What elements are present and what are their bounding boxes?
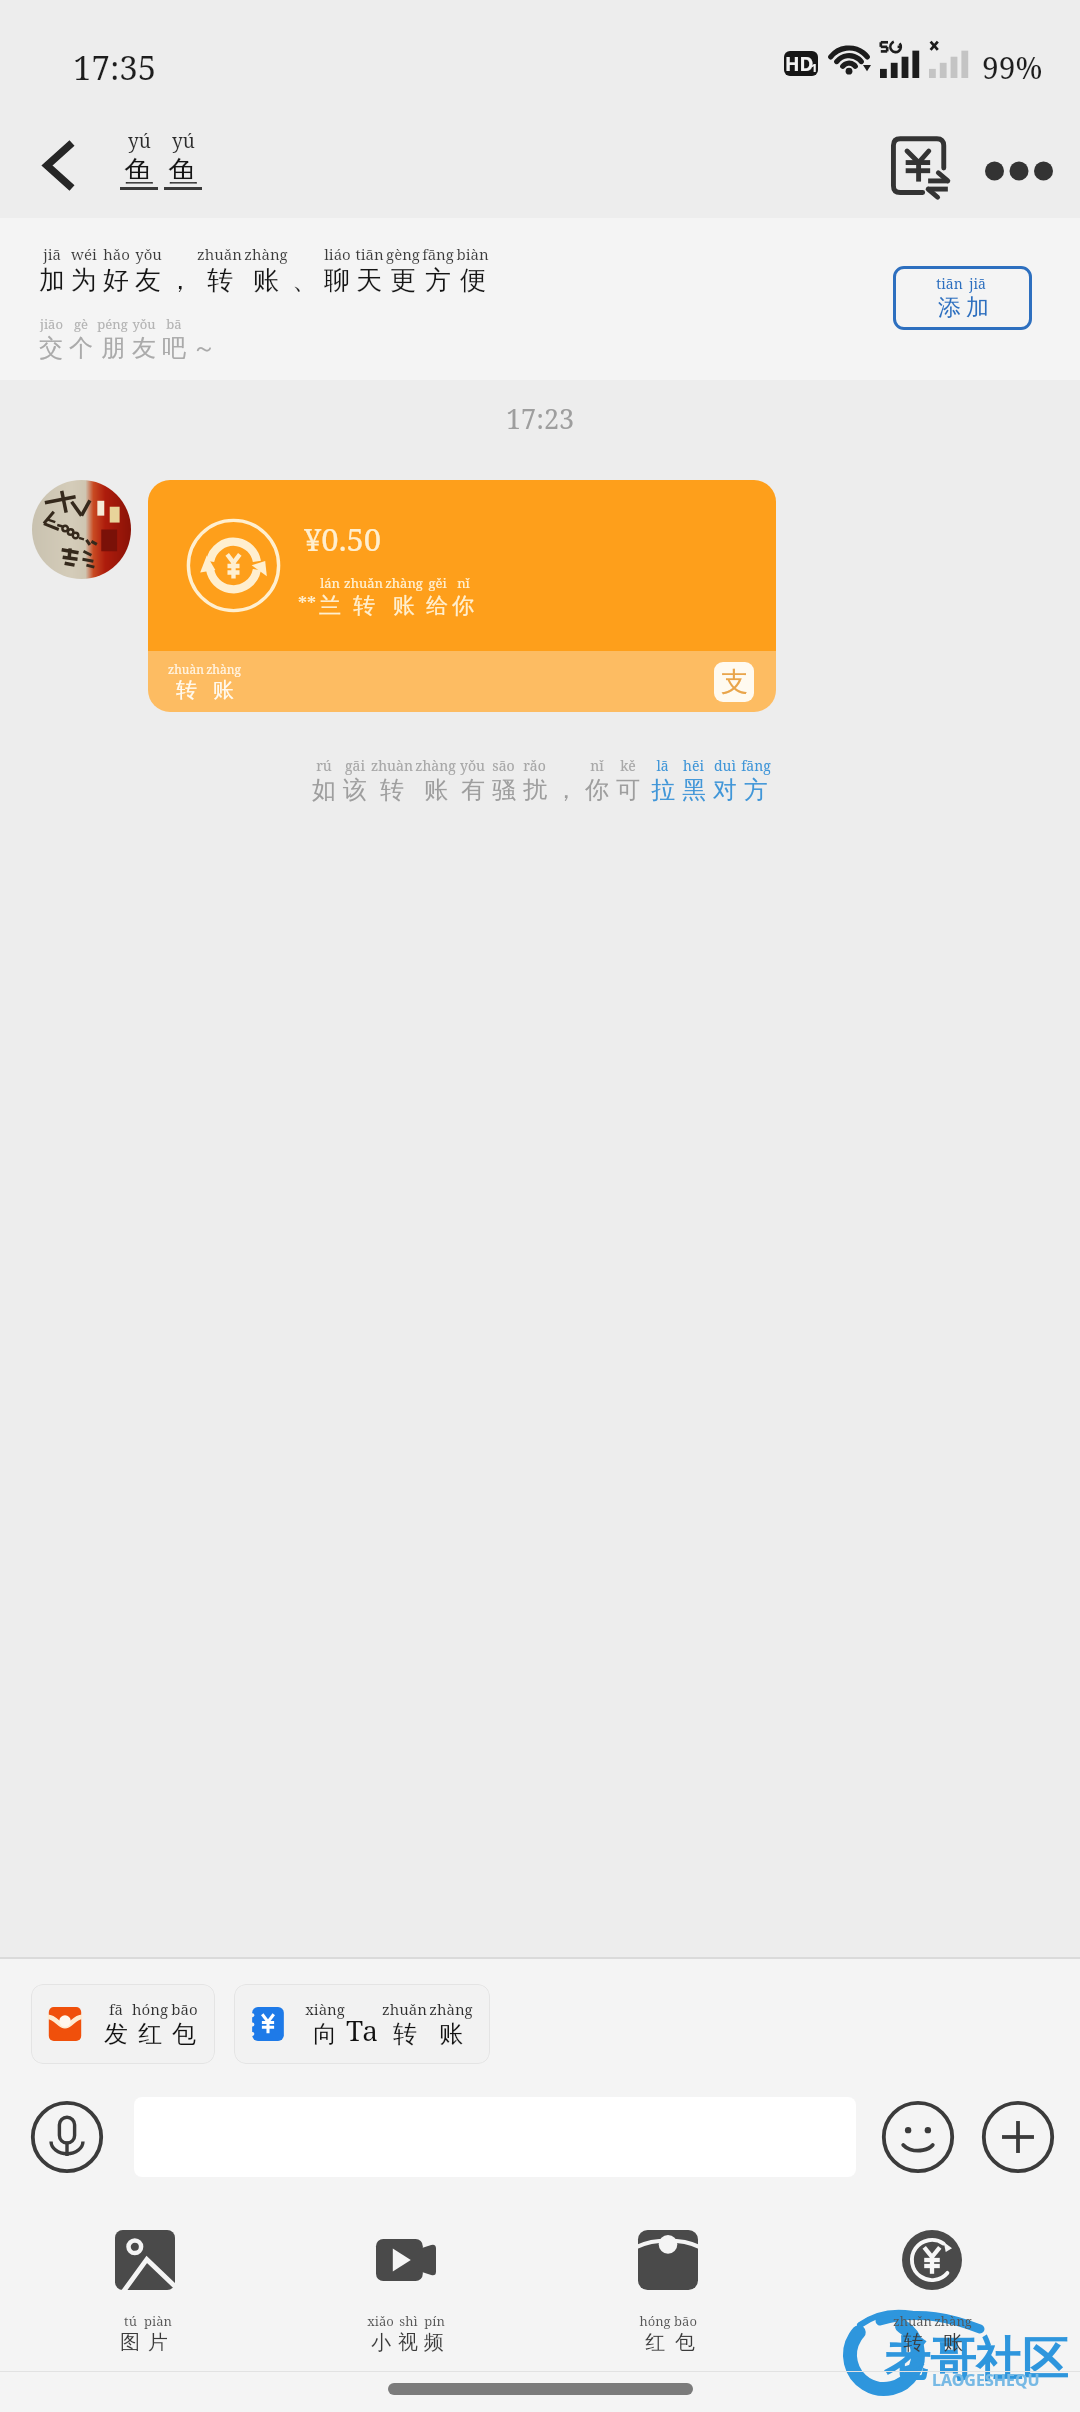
button[interactable]: Back [18, 124, 100, 206]
staticText: 兰 [319, 592, 341, 620]
button[interactable]: Emoji [879, 2098, 957, 2176]
staticText: ～ [192, 333, 216, 363]
button[interactable]: hóng [588, 2230, 748, 2355]
staticText: 账 [253, 264, 279, 297]
staticText: 支 [721, 665, 748, 699]
staticText: 为 [71, 264, 97, 297]
staticText: 友 [135, 264, 161, 297]
staticText: 视 [398, 2330, 418, 2355]
staticText: 账 [424, 775, 448, 805]
staticText: 拉 [651, 775, 675, 805]
staticText: 加 [966, 293, 989, 322]
staticText: nǐ [590, 756, 604, 775]
button[interactable]: More options [979, 2098, 1057, 2176]
staticText: pín [424, 2312, 445, 2330]
staticText: 17:23 [506, 400, 575, 437]
staticText: yú [172, 128, 195, 154]
button[interactable] [32, 480, 131, 579]
staticText: 该 [343, 775, 367, 805]
staticText: gāi [345, 756, 365, 775]
staticText: 老哥社区 [884, 2331, 1068, 2389]
staticText: 个 [69, 333, 93, 363]
button[interactable]: tiān [893, 266, 1032, 330]
button[interactable]: tú [65, 2230, 225, 2355]
staticText: 有 [461, 775, 485, 805]
staticText: zhuǎn [382, 1999, 427, 2019]
staticText: xiàng [305, 1999, 345, 2019]
staticText: yǒu [132, 315, 156, 333]
staticText: zhàng [244, 244, 288, 264]
staticText: HD [785, 51, 814, 76]
staticText: gè [74, 315, 88, 333]
staticText: zhuàn [371, 756, 413, 775]
staticText: 账 [393, 592, 415, 620]
staticText: 账 [213, 677, 234, 703]
staticText: ， [167, 264, 193, 297]
staticText: 转 [207, 264, 233, 297]
staticText: 红 [645, 2330, 665, 2355]
staticText: rú [316, 756, 332, 775]
staticText: tú [124, 2312, 137, 2330]
staticText: zhàng [429, 1999, 473, 2019]
staticText: zhuǎn [344, 574, 383, 592]
button[interactable]: Transfer [879, 125, 965, 211]
button[interactable]: zhuǎn [852, 2230, 1012, 2355]
staticText: 更 [390, 264, 416, 297]
staticText: Ta [346, 2011, 379, 2049]
staticText: 给 [426, 592, 448, 620]
staticText: 便 [460, 264, 486, 297]
staticText: 转 [353, 592, 375, 620]
staticText: 方 [744, 775, 768, 805]
staticText: 你 [452, 592, 474, 620]
staticText: 友 [132, 333, 156, 363]
staticText: 聊 [324, 264, 350, 297]
staticText: yǒu [460, 756, 485, 775]
staticText: xiǎo [367, 2312, 394, 2330]
staticText: 转 [176, 677, 197, 703]
staticText: bā [166, 315, 182, 333]
staticText: hóng [639, 2312, 671, 2330]
staticText: 添 [938, 293, 961, 322]
staticText: 账 [439, 2019, 463, 2049]
staticText: 好 [103, 264, 129, 297]
button[interactable]: xiǎo [326, 2230, 486, 2355]
button[interactable]: More [976, 128, 1062, 214]
staticText: rǎo [523, 756, 546, 775]
staticText: 加 [39, 264, 65, 297]
staticText: liáo [324, 244, 351, 264]
staticText: piàn [144, 2312, 172, 2330]
staticText: zhàng [934, 2312, 972, 2330]
staticText: jiāo [40, 315, 63, 333]
staticText: lán [320, 574, 340, 592]
staticText: 红 [138, 2019, 162, 2049]
staticText: 朋 [101, 333, 125, 363]
staticText: 包 [172, 2019, 196, 2049]
button[interactable]: Voice input [28, 2098, 106, 2176]
staticText: 片 [148, 2330, 168, 2355]
staticText: fāng [422, 244, 454, 264]
staticText: zhuǎn [893, 2312, 932, 2330]
staticText: 1 [811, 60, 818, 75]
button[interactable]: xiàng [234, 1984, 490, 2064]
staticText: zhuàn [168, 661, 204, 677]
staticText: lā [656, 756, 669, 775]
staticText: hēi [683, 756, 704, 775]
staticText: wéi [71, 244, 97, 264]
staticText: yǒu [135, 244, 162, 264]
staticText: 对 [713, 775, 737, 805]
staticText: 天 [356, 264, 382, 297]
staticText: 、 [292, 264, 318, 297]
staticText: 方 [425, 264, 451, 297]
staticText: ， [554, 775, 578, 805]
staticText: zhàng [206, 661, 241, 677]
staticText: 黑 [682, 775, 706, 805]
staticText: bāo [171, 1999, 198, 2019]
button[interactable]: fā [31, 1984, 215, 2064]
staticText: 发 [104, 2019, 128, 2049]
staticText: 鱼 [124, 153, 154, 184]
staticText: 你 [585, 775, 609, 805]
staticText: 骚 [492, 775, 516, 805]
staticText: 转 [393, 2019, 417, 2049]
staticText: 转 [380, 775, 404, 805]
